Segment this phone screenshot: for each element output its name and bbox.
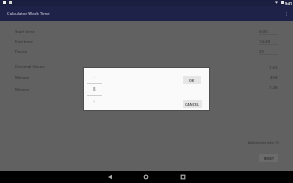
- staticText: End time: [15, 38, 33, 44]
- staticText: Monen: [15, 86, 30, 92]
- button[interactable]: Back: [105, 172, 115, 182]
- staticText: Minute: [15, 74, 30, 80]
- button[interactable]: 8: [87, 84, 102, 94]
- staticText: OK: [189, 78, 195, 83]
- staticText: RESET: [264, 156, 274, 161]
- button[interactable]: More options: [281, 6, 292, 21]
- button[interactable]: Start time: [15, 27, 35, 35]
- button[interactable]: 6:00: [259, 27, 278, 35]
- staticText: 458: [270, 74, 278, 80]
- staticText: 7.63: [269, 64, 278, 70]
- button[interactable]: Recent apps: [178, 172, 188, 182]
- staticText: 7.38: [269, 84, 278, 90]
- button[interactable]: Minute: [15, 73, 30, 81]
- staticText: 9: [93, 99, 96, 104]
- button[interactable]: Decimal Hours: [15, 62, 45, 70]
- staticText: Start time: [15, 28, 35, 34]
- button[interactable]: 35: [259, 47, 278, 55]
- button[interactable]: Home: [141, 172, 151, 182]
- staticText: 8: [93, 86, 96, 92]
- staticText: CANCEL: [185, 102, 200, 107]
- button[interactable]: Monen: [15, 85, 30, 93]
- button[interactable]: RESET: [259, 154, 278, 162]
- staticText: Calculator Work Time: [7, 11, 50, 17]
- staticText: Added extra time: 15: [248, 141, 280, 145]
- staticText: 6:00: [259, 28, 268, 34]
- button[interactable]: 14:38: [259, 37, 278, 45]
- staticText: Pause: [15, 48, 28, 54]
- button[interactable]: CANCEL: [183, 100, 202, 108]
- button[interactable]: End time: [15, 37, 33, 45]
- button[interactable]: Pause: [15, 47, 28, 55]
- staticText: 35: [259, 48, 264, 54]
- button[interactable]: OK: [183, 76, 201, 84]
- staticText: Decimal Hours: [15, 63, 45, 69]
- staticText: 14:38: [259, 38, 270, 44]
- staticText: 9:41: [285, 1, 293, 6]
